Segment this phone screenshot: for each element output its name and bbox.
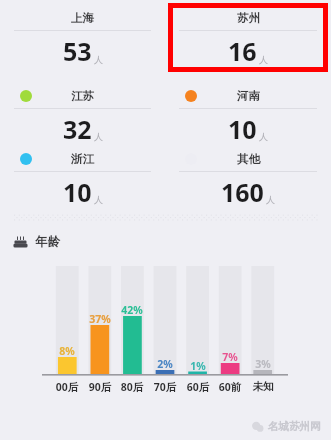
staticText: 10	[228, 112, 257, 145]
staticText: 人	[94, 194, 103, 205]
staticText: 苏州	[237, 11, 260, 25]
button[interactable]: 其他	[165, 145, 331, 208]
staticText: 2%	[149, 357, 181, 371]
staticText: 上海	[71, 11, 94, 25]
button[interactable]: 浙江	[0, 145, 165, 208]
staticText: 80后	[114, 380, 150, 394]
staticText: 16	[228, 34, 257, 68]
button[interactable]: 00后	[49, 380, 85, 394]
staticText: 浙江	[71, 152, 94, 166]
button[interactable]: 90后	[82, 380, 118, 394]
staticText: 人	[94, 54, 103, 65]
staticText: 37%	[84, 312, 116, 326]
staticText: 53	[63, 34, 92, 68]
staticText: 江苏	[71, 89, 94, 103]
staticText: 人	[259, 131, 268, 142]
staticText: 未知	[245, 380, 281, 393]
button[interactable]: 70后	[147, 380, 183, 394]
button[interactable]: 河南	[165, 82, 331, 145]
staticText: 7%	[214, 350, 246, 364]
staticText: 60前	[212, 380, 248, 394]
button[interactable]: 未知	[245, 380, 281, 393]
button[interactable]: 60后	[180, 380, 216, 394]
staticText: 人	[266, 194, 275, 205]
staticText: 70后	[147, 380, 183, 394]
staticText: 1%	[182, 359, 214, 373]
button[interactable]: 80后	[114, 380, 150, 394]
staticText: 60后	[180, 380, 216, 394]
button[interactable]: 苏州	[165, 0, 331, 82]
staticText: 00后	[49, 380, 85, 394]
staticText: 人	[259, 54, 268, 65]
button[interactable]: 上海	[0, 0, 165, 82]
staticText: 10	[63, 175, 92, 208]
staticText: 32	[63, 112, 92, 145]
staticText: 3%	[247, 357, 279, 371]
staticText: 名城苏州网	[268, 420, 321, 433]
staticText: 其他	[237, 152, 260, 166]
staticText: 河南	[237, 89, 260, 103]
staticText: 人	[94, 131, 103, 142]
staticText: 年龄	[35, 234, 60, 250]
staticText: 42%	[116, 303, 148, 317]
staticText: 90后	[82, 380, 118, 394]
button[interactable]: 江苏	[0, 82, 165, 145]
other: Age	[13, 235, 28, 250]
staticText: 160	[221, 175, 264, 208]
staticText: 8%	[51, 344, 83, 358]
button[interactable]: 60前	[212, 380, 248, 394]
button[interactable]: Age	[0, 234, 331, 250]
